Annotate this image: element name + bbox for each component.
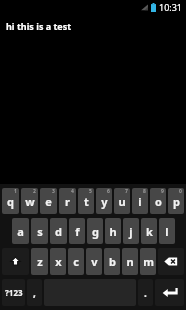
staticText: d	[55, 224, 62, 239]
button[interactable]: 6	[96, 188, 112, 214]
staticText: q	[7, 194, 14, 209]
button[interactable]: Backspace	[158, 248, 184, 275]
button[interactable]: s	[31, 218, 48, 244]
button[interactable]: k	[141, 218, 157, 244]
staticText: 7	[125, 188, 128, 195]
button[interactable]: .	[138, 279, 153, 306]
staticText: b	[109, 254, 116, 269]
button[interactable]: d	[50, 218, 67, 244]
button[interactable]: n	[122, 248, 138, 275]
button[interactable]: b	[104, 248, 120, 275]
button[interactable]: v	[86, 248, 102, 275]
button[interactable]: ?123	[2, 279, 25, 306]
staticText: r	[65, 194, 70, 209]
button[interactable]: 7	[114, 188, 130, 214]
staticText: w	[25, 194, 35, 209]
staticText: 10:31	[159, 1, 183, 13]
staticText: j	[129, 224, 133, 239]
button[interactable]: x	[50, 248, 66, 275]
button[interactable]: 8	[132, 188, 148, 214]
staticText: 8	[143, 188, 146, 195]
staticText: s	[37, 224, 43, 239]
staticText: f	[75, 224, 80, 239]
staticText: h	[109, 224, 117, 239]
staticText: e	[45, 194, 52, 209]
staticText: 0	[179, 188, 182, 195]
button[interactable]: 0	[168, 188, 184, 214]
staticText: 6	[107, 188, 110, 195]
staticText: ,	[33, 286, 36, 300]
button[interactable]: j	[123, 218, 139, 244]
staticText: g	[92, 224, 99, 239]
staticText: ?123	[5, 287, 23, 298]
button[interactable]: 5	[78, 188, 94, 214]
staticText: o	[155, 194, 162, 209]
staticText: u	[118, 194, 126, 209]
staticText: v	[91, 254, 98, 269]
staticText: k	[146, 224, 153, 239]
button[interactable]: 2	[21, 188, 38, 214]
staticText: 5	[89, 188, 92, 195]
button[interactable]: c	[68, 248, 84, 275]
staticText: c	[73, 254, 79, 269]
button[interactable]: Shift	[2, 248, 29, 275]
button[interactable]: g	[87, 218, 103, 244]
staticText: 1	[14, 188, 17, 195]
staticText: 3	[52, 188, 55, 195]
staticText: l	[165, 224, 169, 239]
staticText: 9	[161, 188, 164, 195]
button[interactable]: z	[31, 248, 48, 275]
button[interactable]: l	[159, 218, 175, 244]
button[interactable]: 3	[40, 188, 57, 214]
staticText: 2	[33, 188, 36, 195]
staticText: hi this is a test	[6, 20, 72, 32]
button[interactable]: m	[140, 248, 156, 275]
button[interactable]: ,	[27, 279, 42, 306]
staticText: y	[101, 194, 108, 209]
button[interactable]: 1	[2, 188, 19, 214]
button[interactable]: h	[105, 218, 121, 244]
button[interactable]: 9	[150, 188, 166, 214]
button[interactable]: f	[69, 218, 85, 244]
button[interactable]: a	[12, 218, 29, 244]
staticText: n	[126, 254, 134, 269]
staticText: 4	[71, 188, 74, 195]
staticText: t	[84, 194, 89, 209]
button[interactable]: 4	[59, 188, 76, 214]
staticText: i	[138, 194, 142, 209]
staticText: z	[37, 254, 43, 269]
staticText: a	[17, 224, 24, 239]
staticText: x	[55, 254, 62, 269]
staticText: p	[173, 194, 180, 209]
staticText: .	[144, 286, 147, 300]
staticText: m	[143, 254, 154, 269]
button[interactable]: Enter	[155, 279, 184, 306]
